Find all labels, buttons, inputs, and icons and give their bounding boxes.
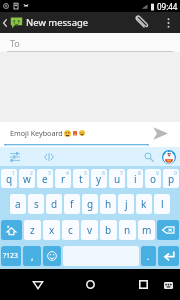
button[interactable]: l bbox=[154, 194, 170, 214]
button[interactable]: g bbox=[82, 194, 98, 214]
button[interactable]: h bbox=[100, 194, 116, 214]
button[interactable]: , bbox=[23, 246, 41, 266]
button[interactable]: d bbox=[46, 194, 62, 214]
button[interactable]: Emoji bbox=[43, 246, 61, 266]
staticText: n bbox=[124, 223, 131, 237]
staticText: u bbox=[114, 172, 121, 186]
staticText: h bbox=[105, 197, 112, 211]
button[interactable]: v bbox=[81, 220, 98, 240]
staticText: w bbox=[23, 172, 31, 186]
button[interactable]: Recent apps bbox=[130, 271, 157, 298]
button[interactable]: q bbox=[1, 169, 17, 188]
button[interactable]: More options bbox=[160, 12, 176, 33]
staticText: New message bbox=[26, 16, 89, 29]
button[interactable]: Back bbox=[0, 12, 9, 33]
button[interactable]: Back bbox=[24, 271, 51, 298]
staticText: y bbox=[96, 172, 102, 186]
staticText: o bbox=[150, 172, 157, 186]
staticText: v bbox=[87, 223, 93, 237]
button[interactable]: r bbox=[55, 169, 71, 188]
button[interactable]: i bbox=[127, 169, 143, 188]
staticText: , bbox=[31, 250, 34, 262]
staticText: ?123 bbox=[3, 251, 19, 261]
staticText: . bbox=[147, 250, 150, 262]
button[interactable]: Enter bbox=[158, 246, 179, 266]
staticText: m bbox=[142, 223, 152, 237]
button[interactable]: Settings bbox=[6, 148, 24, 166]
staticText: 8 bbox=[138, 170, 141, 177]
button[interactable]: c bbox=[62, 220, 79, 240]
button[interactable]: x bbox=[43, 220, 60, 240]
staticText: x bbox=[49, 223, 55, 237]
staticText: 1 bbox=[12, 170, 15, 177]
button[interactable]: t bbox=[73, 169, 89, 188]
staticText: 9 bbox=[156, 170, 159, 177]
staticText: 4 bbox=[66, 170, 69, 177]
button[interactable]: . bbox=[141, 246, 156, 266]
staticText: b bbox=[105, 223, 112, 237]
staticText: z bbox=[30, 223, 35, 237]
button[interactable]: s bbox=[28, 194, 44, 214]
button[interactable]: Home bbox=[77, 271, 104, 298]
button[interactable]: m bbox=[138, 220, 155, 240]
button[interactable]: p bbox=[163, 169, 179, 188]
button[interactable]: b bbox=[100, 220, 117, 240]
button[interactable]: u bbox=[109, 169, 125, 188]
button[interactable]: z bbox=[24, 220, 41, 240]
button[interactable]: w bbox=[19, 169, 35, 188]
staticText: 2 bbox=[30, 170, 33, 177]
staticText: f bbox=[70, 197, 74, 211]
button[interactable]: ?123 bbox=[1, 246, 21, 266]
staticText: i bbox=[134, 172, 137, 186]
staticText: t bbox=[79, 172, 83, 186]
button[interactable]: k bbox=[136, 194, 152, 214]
staticText: e bbox=[42, 172, 48, 186]
button[interactable]: a bbox=[10, 194, 26, 214]
staticText: To bbox=[10, 37, 20, 49]
button[interactable]: f bbox=[64, 194, 80, 214]
staticText: 3 bbox=[48, 170, 51, 177]
staticText: 5 bbox=[84, 170, 87, 177]
staticText: a bbox=[15, 197, 21, 211]
staticText: c bbox=[68, 223, 73, 237]
staticText: s bbox=[34, 197, 39, 211]
staticText: q bbox=[6, 172, 13, 186]
staticText: k bbox=[141, 197, 147, 211]
staticText: r bbox=[61, 172, 66, 186]
button[interactable]: Send bbox=[148, 122, 172, 144]
button[interactable]: y bbox=[91, 169, 107, 188]
staticText: p bbox=[168, 172, 175, 186]
button[interactable]: Keyboard theme bbox=[160, 148, 178, 166]
button[interactable]: o bbox=[145, 169, 161, 188]
button[interactable]: Shift bbox=[1, 220, 22, 240]
button[interactable]: Move cursor bbox=[40, 148, 58, 166]
staticText: 6 bbox=[102, 170, 105, 177]
button[interactable]: Backspace bbox=[157, 220, 179, 240]
staticText: 09:44 bbox=[157, 1, 178, 12]
button[interactable]: n bbox=[119, 220, 136, 240]
button[interactable]: Switch keyboard bbox=[161, 278, 175, 292]
button[interactable]: Attach file bbox=[132, 12, 153, 33]
button[interactable]: Search bbox=[140, 148, 158, 166]
staticText: j bbox=[125, 197, 128, 211]
staticText: l bbox=[161, 197, 164, 211]
staticText: Emoji Keyboard bbox=[10, 128, 63, 138]
button[interactable]: e bbox=[37, 169, 53, 188]
button[interactable]: j bbox=[118, 194, 134, 214]
staticText: 0 bbox=[174, 170, 177, 177]
staticText: d bbox=[51, 197, 58, 211]
staticText: 7 bbox=[120, 170, 123, 177]
staticText: g bbox=[87, 197, 94, 211]
